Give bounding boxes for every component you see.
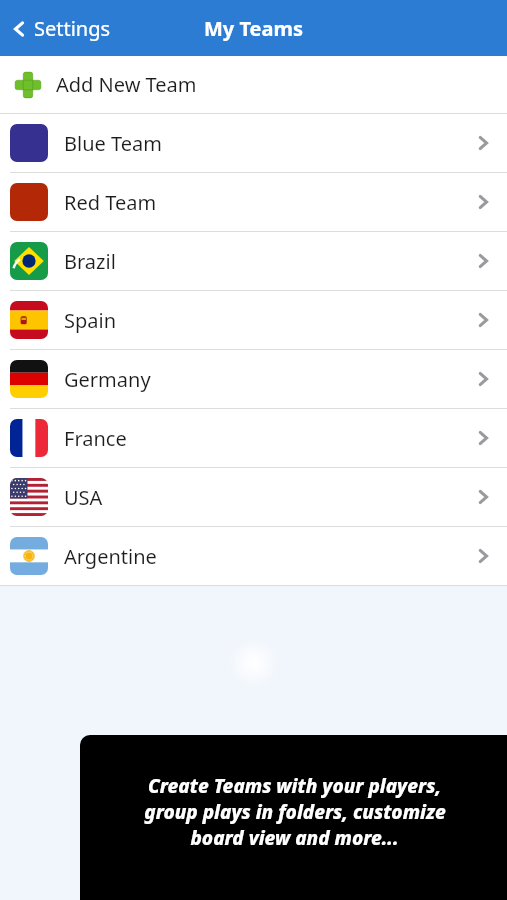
button[interactable]: USA [0, 468, 507, 526]
button[interactable]: Spain [0, 291, 507, 349]
staticText: Create Teams with your players, [148, 773, 441, 799]
staticText: Argentine [64, 543, 157, 570]
staticText: France [64, 425, 127, 452]
staticText: Add New Team [56, 71, 197, 98]
button[interactable]: Add New Team [0, 56, 507, 113]
staticText: My Teams [204, 15, 304, 42]
staticText: USA [64, 484, 103, 511]
button[interactable]: Red Team [0, 173, 507, 231]
staticText: Brazil [64, 248, 116, 275]
staticText: Red Team [64, 189, 157, 216]
button[interactable]: France [0, 409, 507, 467]
staticText: Settings [34, 15, 111, 42]
button[interactable]: Argentine [0, 527, 507, 585]
staticText: Blue Team [64, 130, 162, 157]
button[interactable]: Settings [8, 15, 119, 42]
button[interactable]: Blue Team [0, 114, 507, 172]
button[interactable]: Create Teams with your players, [80, 735, 507, 900]
staticText: Germany [64, 366, 151, 393]
staticText: group plays in folders, customize [144, 799, 446, 825]
button[interactable]: Brazil [0, 232, 507, 290]
staticText: Spain [64, 307, 117, 334]
staticText: board view and more... [190, 825, 399, 851]
button[interactable]: Germany [0, 350, 507, 408]
